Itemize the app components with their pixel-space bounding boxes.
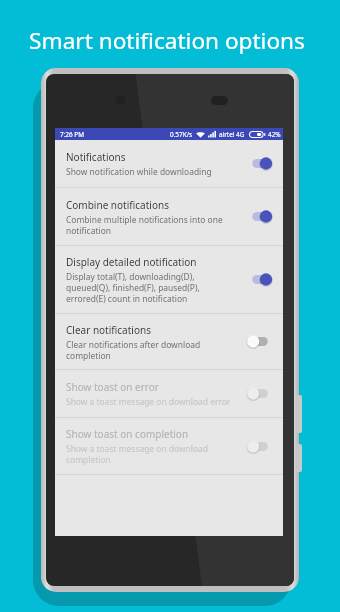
- button[interactable]: Notifications: [55, 140, 283, 187]
- button[interactable]: Toggle setting: [247, 387, 272, 400]
- staticText: Show a toast message on download complet…: [66, 443, 236, 465]
- staticText: Display total(T), downloading(D), queued…: [66, 271, 236, 304]
- staticText: 0.57K/s: [170, 130, 193, 139]
- staticText: Notifications: [66, 150, 126, 164]
- staticText: Show toast on error: [66, 380, 159, 394]
- button[interactable]: Toggle setting: [247, 273, 272, 286]
- staticText: Clear notifications: [66, 323, 151, 337]
- button[interactable]: Toggle setting: [247, 210, 272, 223]
- staticText: Combine notifications: [66, 198, 169, 212]
- button[interactable]: Display detailed notification: [55, 246, 283, 313]
- staticText: Show toast on completion: [66, 427, 189, 441]
- button[interactable]: Combine notifications: [55, 188, 283, 245]
- staticText: Show a toast message on download error: [66, 396, 231, 408]
- staticText: 7:26 PM: [60, 130, 85, 139]
- button[interactable]: Toggle setting: [247, 157, 272, 170]
- staticText: airtel 4G: [219, 130, 245, 139]
- staticText: 42%: [268, 130, 281, 139]
- button[interactable]: Show toast on completion: [55, 418, 283, 474]
- staticText: Combine multiple notifications into one …: [66, 214, 236, 236]
- button[interactable]: Toggle setting: [247, 440, 272, 453]
- staticText: Show notification while downloading: [66, 166, 212, 178]
- button[interactable]: Show toast on error: [55, 370, 283, 417]
- staticText: Smart notification options: [0, 25, 337, 56]
- staticText: Clear notifications after download compl…: [66, 339, 236, 361]
- button[interactable]: Toggle setting: [247, 335, 272, 348]
- staticText: Display detailed notification: [66, 255, 197, 269]
- button[interactable]: Clear notifications: [55, 314, 283, 369]
